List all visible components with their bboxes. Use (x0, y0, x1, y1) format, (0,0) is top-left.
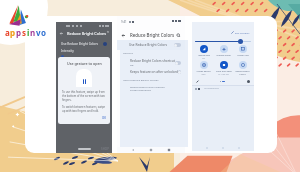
button[interactable] (178, 70, 181, 74)
staticText: OPTIONS (123, 52, 134, 55)
other: Back (121, 33, 126, 38)
staticText: Reduce Bright Colors (233, 70, 252, 76)
staticText: No notifications (204, 87, 219, 90)
staticText: Lv. 1100: Off (218, 73, 229, 75)
staticText: 9:41 (121, 20, 127, 24)
other: Back (59, 31, 64, 36)
staticText: o (41, 27, 46, 38)
button[interactable]: Back (131, 148, 135, 152)
staticText: Start (201, 73, 206, 75)
button[interactable]: Reduce Bright Colors (233, 61, 252, 76)
staticText: Screen Record (196, 70, 211, 73)
staticText: Edit Symbols (235, 31, 250, 34)
button[interactable]: Back (59, 29, 109, 38)
staticText: Use gesture to open (67, 61, 102, 66)
button[interactable]: OK (102, 116, 106, 120)
button[interactable] (174, 43, 181, 47)
button[interactable]: Use Reduce Bright Colors (129, 40, 181, 50)
staticText: Use Reduce Bright Colors (129, 43, 168, 47)
staticText: Airplane mode (216, 54, 231, 57)
staticText: Off (130, 63, 134, 66)
staticText: ABOUT REDUCE BRIGHT COLORS (123, 79, 159, 82)
staticText: Screen Cast (237, 54, 249, 57)
staticText: s (22, 27, 27, 38)
staticText: To switch between features, swipe up wit… (62, 105, 106, 113)
other: Search (176, 33, 181, 38)
button[interactable]: Edit (196, 80, 199, 83)
button[interactable]: Airplane mode (214, 45, 233, 57)
button[interactable]: Recents (167, 148, 171, 152)
other: Search (107, 31, 109, 36)
button[interactable]: Screen Record (194, 61, 213, 75)
staticText: Mobile data (198, 54, 210, 57)
button[interactable] (175, 61, 181, 65)
button[interactable]: Mobile data (194, 45, 213, 59)
staticText: p (10, 27, 16, 38)
staticText: SHOP (101, 147, 110, 151)
staticText: i (27, 27, 30, 38)
button[interactable]: Reduce Bright Colors shortcut (130, 57, 181, 68)
staticText: Reduce Bright Colors (130, 32, 175, 38)
staticText: n (30, 27, 36, 38)
staticText: p (16, 27, 22, 38)
staticText: v (36, 27, 41, 38)
staticText: Extra Dim Sleep (216, 70, 232, 73)
staticText: Intensity (61, 49, 74, 53)
button[interactable]: Extra Dim Sleep (214, 61, 233, 75)
staticText: Use Reduce Bright Colors (61, 42, 98, 46)
button[interactable]: Edit Symbols (231, 31, 250, 34)
button[interactable]: Home (149, 148, 153, 152)
button[interactable]: Settings (247, 80, 250, 83)
button[interactable]: Use Reduce Bright Colors (61, 40, 107, 48)
button[interactable]: Screen Cast (233, 45, 252, 57)
staticText: Reduce Bright Colors (67, 31, 107, 36)
staticText: Reduce Bright Colors shortcut (130, 59, 175, 63)
staticText: a (5, 27, 10, 38)
button[interactable]: Back (121, 30, 181, 40)
button[interactable]: Keeps feature on after unlocked (130, 67, 181, 76)
staticText: Reduce Bright Colors reduces screen brig… (130, 85, 172, 91)
staticText: On (202, 57, 205, 59)
staticText: Keeps feature on after unlocked (130, 70, 178, 74)
staticText: To use this feature, swipe up from the b… (62, 90, 106, 102)
